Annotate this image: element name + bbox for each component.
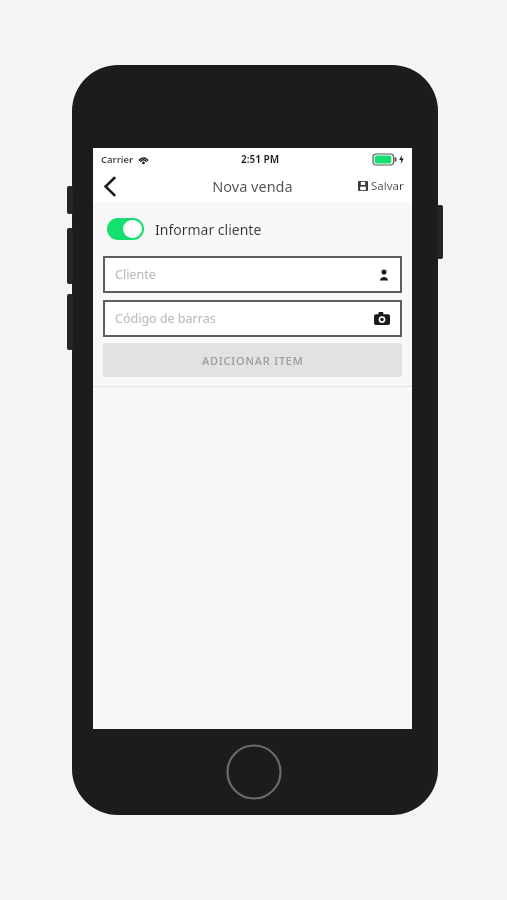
- button[interactable]: Salvar: [350, 172, 412, 200]
- button[interactable]: ADICIONAR ITEM: [103, 343, 402, 377]
- staticText: Informar cliente: [155, 220, 262, 239]
- staticText: Código de barras: [115, 310, 216, 327]
- button[interactable]: Cliente: [103, 256, 402, 293]
- staticText: ADICIONAR ITEM: [202, 353, 304, 368]
- staticText: Nova venda: [212, 176, 293, 196]
- button[interactable]: Back: [93, 170, 127, 202]
- staticText: Cliente: [115, 266, 156, 283]
- other: Select client: [378, 269, 390, 281]
- button[interactable]: Código de barras: [103, 300, 402, 337]
- button[interactable]: Informar cliente: [93, 212, 412, 246]
- staticText: 2:51 PM: [241, 152, 280, 166]
- staticText: Salvar: [371, 178, 404, 194]
- other: Scan barcode: [374, 312, 390, 325]
- staticText: Carrier: [101, 153, 134, 166]
